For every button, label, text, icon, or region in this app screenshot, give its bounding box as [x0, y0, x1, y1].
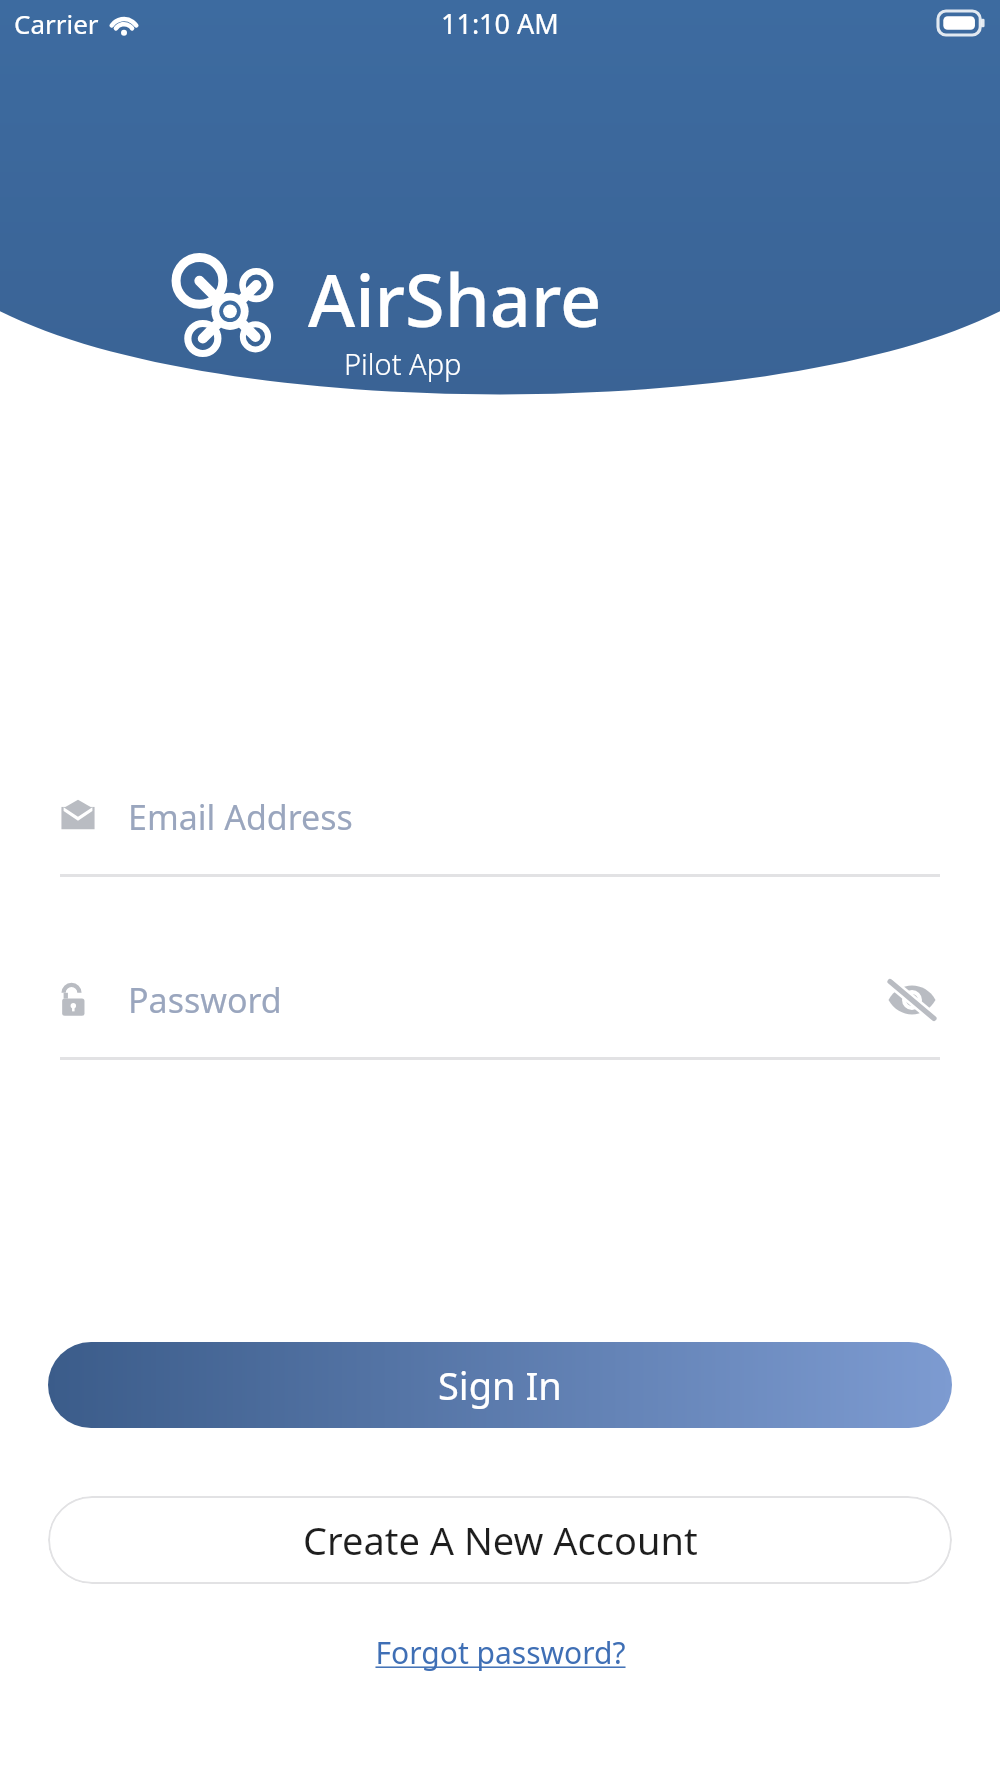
- button[interactable]: Create A New Account: [48, 1496, 952, 1584]
- button[interactable]: Password: [60, 963, 940, 1060]
- button[interactable]: Email: [60, 780, 940, 877]
- staticText: Pilot App: [344, 344, 462, 383]
- staticText: Password: [128, 977, 884, 1023]
- other: AirShare logo: [170, 250, 290, 368]
- staticText: Create A New Account: [303, 1514, 698, 1566]
- staticText: Forgot password?: [375, 1632, 626, 1673]
- staticText: Email Address: [128, 794, 940, 840]
- staticText: 11:10 AM: [441, 5, 559, 42]
- button[interactable]: Forgot password?: [365, 1626, 636, 1679]
- button[interactable]: Toggle password visibility: [884, 972, 940, 1028]
- staticText: Carrier: [14, 6, 99, 41]
- staticText: AirShare: [308, 250, 602, 348]
- other: Password: [60, 982, 96, 1018]
- staticText: Sign In: [438, 1359, 562, 1411]
- other: Email: [60, 799, 96, 835]
- button[interactable]: Sign In: [48, 1342, 952, 1428]
